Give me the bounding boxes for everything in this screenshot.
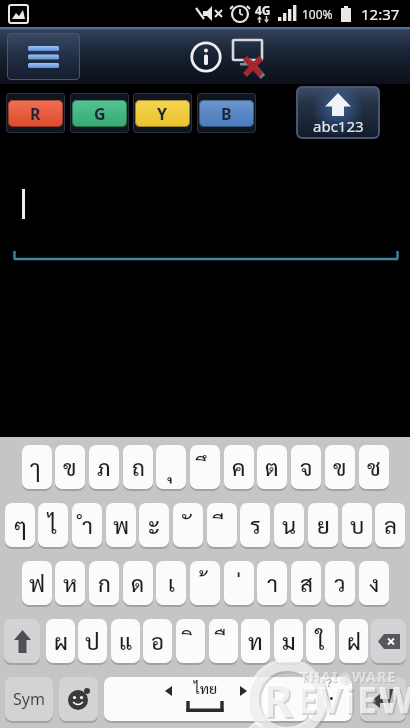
- staticText: .: [329, 681, 335, 706]
- button[interactable]: ?: [308, 677, 352, 721]
- button[interactable]: จ: [291, 445, 321, 489]
- staticText: ้: [202, 569, 208, 598]
- button[interactable]: ค: [224, 445, 254, 489]
- button[interactable]: [371, 619, 406, 663]
- staticText: ร: [250, 511, 261, 540]
- staticText: ว: [334, 569, 346, 598]
- button[interactable]: ึ: [190, 445, 220, 489]
- staticText: ถ: [132, 453, 145, 482]
- staticText: Sym: [13, 688, 45, 710]
- button[interactable]: ก: [89, 561, 119, 605]
- staticText: THAI◉WARE: [300, 667, 397, 686]
- staticText: ย: [317, 511, 330, 540]
- button[interactable]: [59, 677, 98, 721]
- staticText: ข: [333, 453, 347, 482]
- staticText: ึ: [202, 453, 208, 482]
- button[interactable]: ห: [55, 561, 85, 605]
- button[interactable]: [104, 677, 308, 721]
- staticText: ใ: [316, 627, 325, 656]
- button[interactable]: ่: [224, 561, 254, 605]
- button[interactable]: ต: [257, 445, 287, 489]
- button[interactable]: [360, 677, 406, 721]
- staticText: ไทย: [194, 679, 218, 697]
- button[interactable]: ว: [325, 561, 355, 605]
- staticText: บ: [350, 511, 365, 540]
- staticText: ิ: [188, 627, 194, 656]
- staticText: B: [221, 103, 232, 125]
- staticText: R: [30, 103, 41, 125]
- button[interactable]: ง: [359, 561, 389, 605]
- button[interactable]: ๆ: [5, 503, 35, 547]
- staticText: พ: [113, 511, 129, 540]
- staticText: ฟ: [29, 569, 45, 598]
- button[interactable]: ผ: [46, 619, 75, 663]
- button[interactable]: ร: [240, 503, 270, 547]
- button[interactable]: น: [274, 503, 304, 547]
- button[interactable]: ภ: [89, 445, 119, 489]
- button[interactable]: ั: [173, 503, 203, 547]
- staticText: ี: [219, 511, 225, 540]
- button[interactable]: Y: [135, 100, 190, 127]
- button[interactable]: บ: [342, 503, 372, 547]
- button[interactable]: [4, 619, 40, 663]
- button[interactable]: พ: [106, 503, 136, 547]
- staticText: ส: [300, 569, 313, 598]
- button[interactable]: G: [72, 100, 127, 127]
- button[interactable]: [180, 30, 232, 82]
- staticText: ต: [265, 453, 279, 482]
- button[interactable]: ี: [207, 503, 237, 547]
- button[interactable]: ิ: [176, 619, 205, 663]
- button[interactable]: ำ: [72, 503, 102, 547]
- button[interactable]: ุ: [156, 445, 186, 489]
- button[interactable]: ล: [375, 503, 405, 547]
- staticText: EViEW: [299, 678, 410, 726]
- button[interactable]: ข: [325, 445, 355, 489]
- button[interactable]: ป: [78, 619, 107, 663]
- button[interactable]: ไ: [38, 503, 68, 547]
- button[interactable]: ช: [359, 445, 389, 489]
- button[interactable]: ้: [190, 561, 220, 605]
- staticText: THAI◉WARE: [301, 668, 398, 687]
- button[interactable]: แ: [111, 619, 140, 663]
- staticText: ุ: [168, 453, 174, 482]
- button[interactable]: ะ: [139, 503, 169, 547]
- staticText: EViEW: [297, 676, 410, 724]
- button[interactable]: า: [257, 561, 287, 605]
- button[interactable]: ฝ: [339, 619, 368, 663]
- button[interactable]: ส: [291, 561, 321, 605]
- staticText: ห: [63, 569, 78, 598]
- button[interactable]: abc123: [296, 86, 380, 139]
- staticText: ๅ: [34, 453, 41, 482]
- staticText: ?: [327, 677, 332, 690]
- staticText: น: [282, 511, 297, 540]
- button[interactable]: [230, 36, 274, 82]
- staticText: แ: [119, 627, 133, 656]
- button[interactable]: อ: [143, 619, 172, 663]
- button[interactable]: ๅ: [22, 445, 52, 489]
- button[interactable]: ย: [308, 503, 338, 547]
- staticText: R: [262, 668, 293, 728]
- button[interactable]: ใ: [306, 619, 335, 663]
- button[interactable]: ด: [123, 561, 153, 605]
- button[interactable]: ม: [274, 619, 303, 663]
- button[interactable]: เ: [156, 561, 186, 605]
- button[interactable]: ื: [209, 619, 238, 663]
- staticText: ช: [367, 453, 381, 482]
- button[interactable]: R: [8, 100, 63, 127]
- button[interactable]: ข: [55, 445, 85, 489]
- staticText: ะ: [148, 511, 160, 540]
- staticText: ม: [282, 627, 296, 656]
- staticText: ก: [98, 569, 111, 598]
- button[interactable]: Sym: [5, 677, 53, 721]
- button[interactable]: ท: [241, 619, 270, 663]
- button[interactable]: [7, 33, 80, 80]
- button[interactable]: ถ: [123, 445, 153, 489]
- button[interactable]: ฟ: [22, 561, 52, 605]
- staticText: อ: [151, 627, 165, 656]
- staticText: ไ: [48, 511, 58, 540]
- button[interactable]: B: [199, 100, 254, 127]
- staticText: 12:37: [361, 4, 400, 24]
- staticText: ฝ: [347, 627, 361, 656]
- staticText: R: [264, 670, 295, 728]
- staticText: ื: [221, 627, 227, 656]
